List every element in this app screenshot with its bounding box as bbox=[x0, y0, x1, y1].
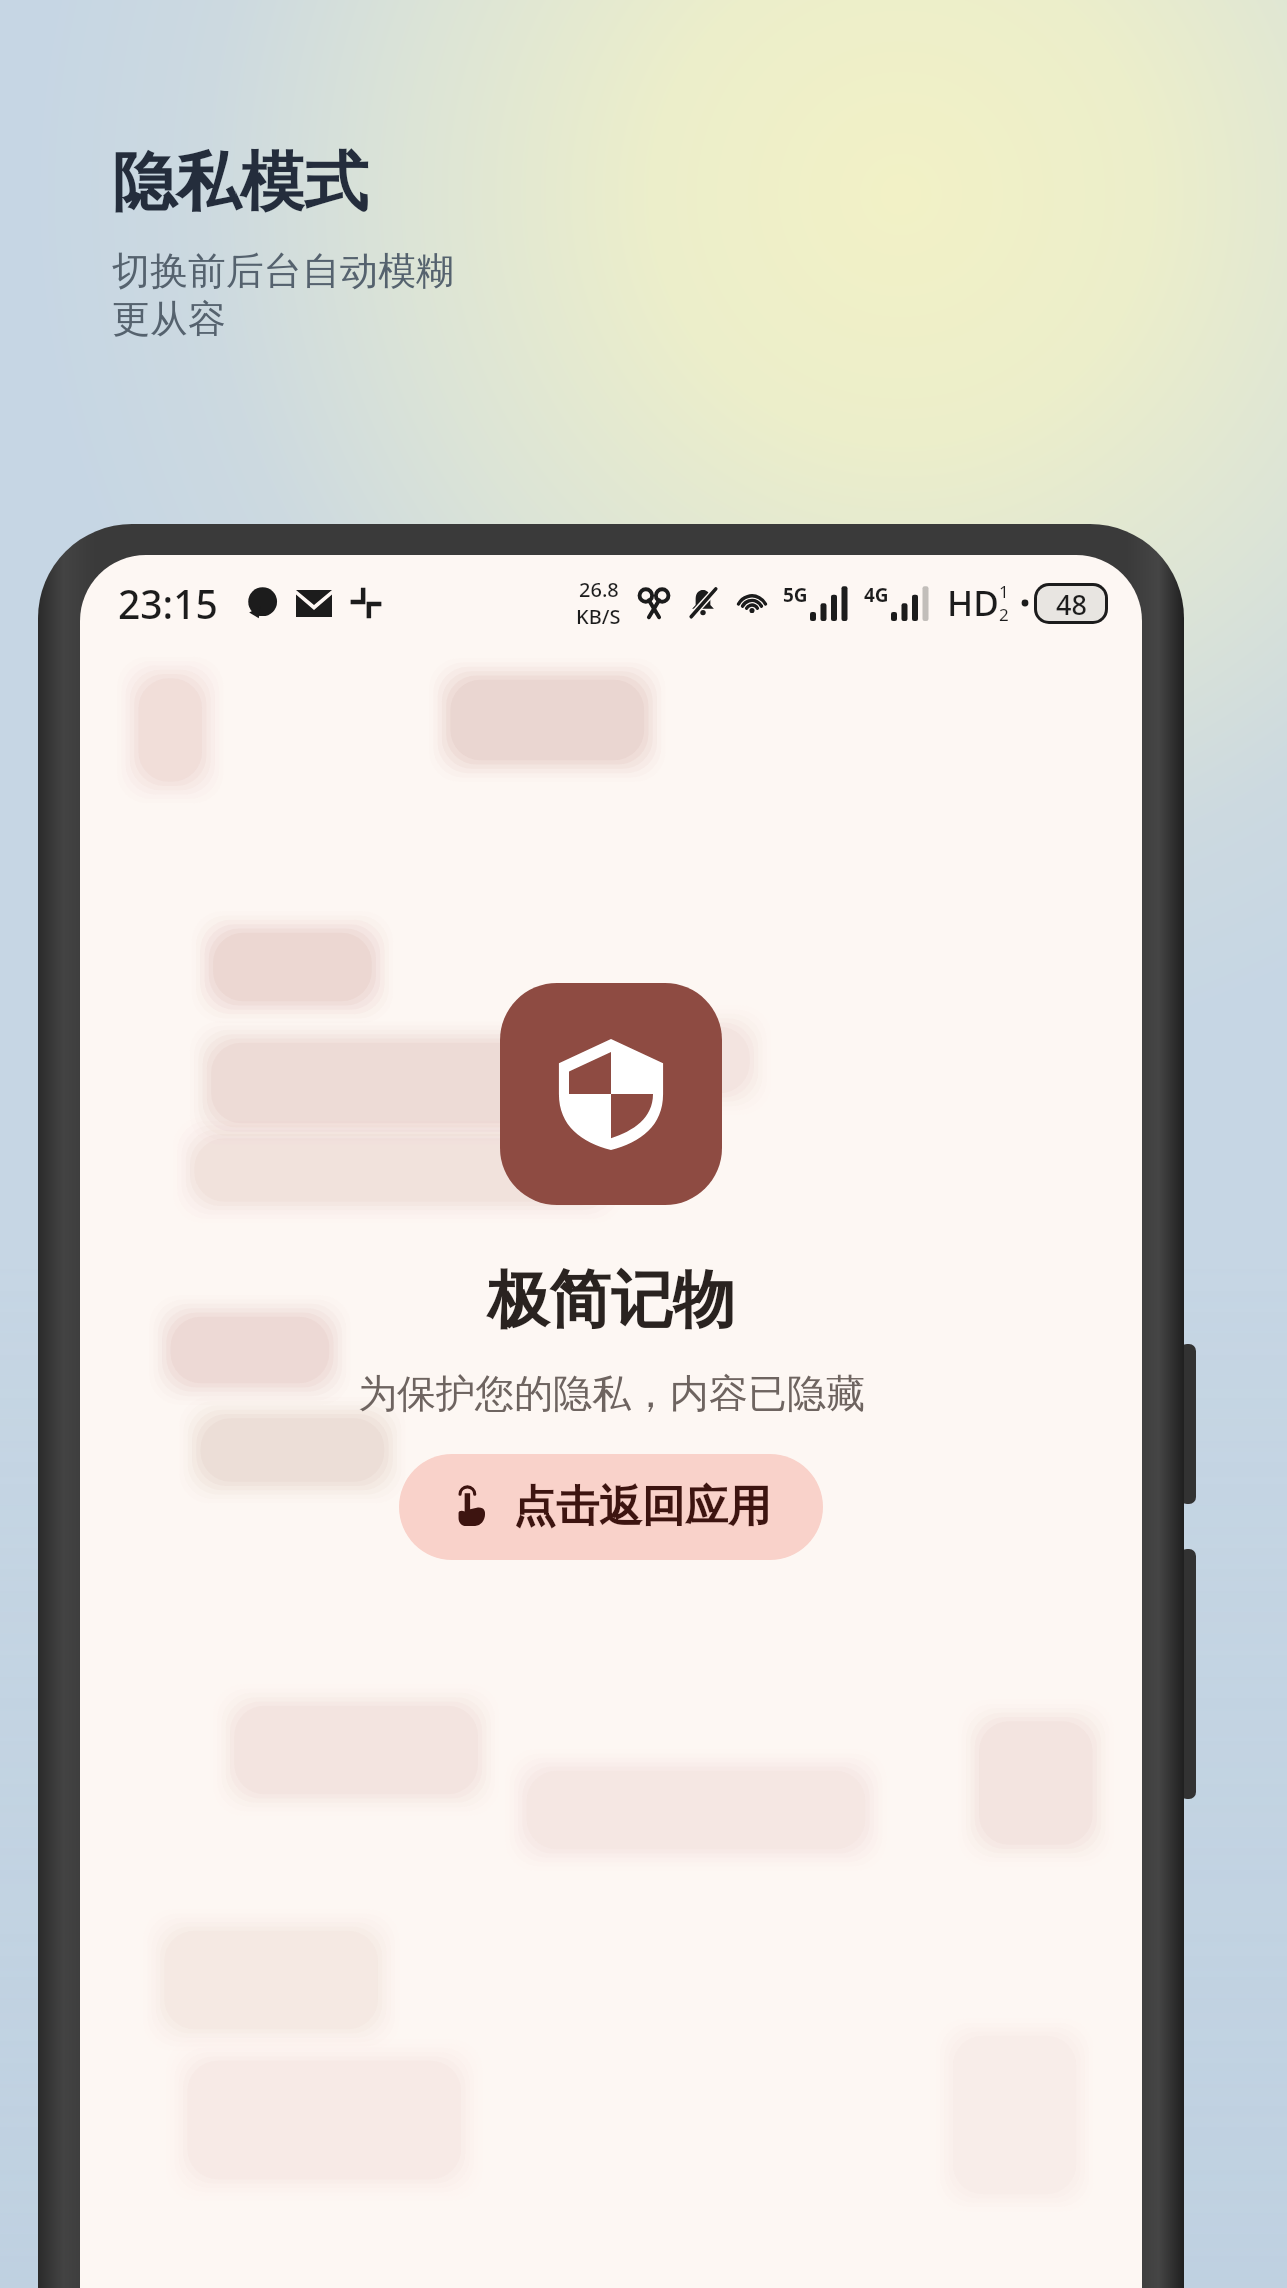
other: Tap bbox=[451, 1486, 493, 1528]
staticText: 隐私模式 bbox=[112, 142, 368, 223]
staticText: 为保护您的隐私，内容已隐藏 bbox=[358, 1369, 865, 1418]
staticText: 23:15 bbox=[118, 577, 218, 630]
staticText: 切换前后台自动模糊 bbox=[112, 247, 454, 295]
staticText: 1 bbox=[999, 580, 1009, 603]
staticText: 极简记物 bbox=[487, 1261, 735, 1339]
staticText: 26.8 bbox=[579, 576, 619, 603]
staticText: 4G bbox=[864, 582, 889, 608]
button[interactable]: Tap bbox=[399, 1454, 823, 1560]
staticText: 更从容 bbox=[112, 295, 226, 343]
staticText: 2 bbox=[999, 603, 1009, 626]
staticText: 5G bbox=[783, 582, 808, 608]
staticText: 48 bbox=[1056, 586, 1087, 621]
staticText: HD bbox=[947, 579, 999, 627]
staticText: KB/S bbox=[576, 603, 621, 630]
staticText: 点击返回应用 bbox=[513, 1480, 771, 1534]
